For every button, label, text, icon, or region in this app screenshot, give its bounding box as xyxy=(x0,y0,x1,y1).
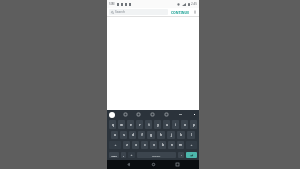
button[interactable]: g xyxy=(147,131,155,139)
button[interactable]: More xyxy=(192,112,197,117)
button[interactable]: c xyxy=(141,141,148,149)
button[interactable]: , xyxy=(121,152,126,158)
button[interactable]: f xyxy=(138,131,145,139)
staticText: d xyxy=(132,133,134,137)
button[interactable]: Recents xyxy=(174,161,181,168)
staticText: j xyxy=(171,133,172,137)
button[interactable]: q xyxy=(109,120,116,129)
staticText: , xyxy=(123,153,124,157)
staticText: f xyxy=(141,133,143,137)
staticText: z xyxy=(126,143,128,147)
button[interactable]: Keyboard tool xyxy=(136,112,141,117)
button[interactable]: Backspace xyxy=(186,141,197,149)
staticText: a xyxy=(114,133,116,137)
button[interactable]: x xyxy=(132,141,139,149)
button[interactable]: h xyxy=(157,131,165,139)
button[interactable]: z xyxy=(123,141,130,149)
staticText: n xyxy=(171,143,173,147)
button[interactable]: u xyxy=(163,120,170,129)
button[interactable]: m xyxy=(177,141,184,149)
button[interactable]: n xyxy=(168,141,175,149)
button[interactable]: Keyboard tool xyxy=(150,112,155,117)
staticText: l xyxy=(191,133,192,137)
button[interactable]: o xyxy=(181,120,188,129)
staticText: y xyxy=(157,123,159,127)
button[interactable]: Shift xyxy=(109,141,121,149)
button[interactable]: Emoji xyxy=(128,152,135,158)
button[interactable]: Home xyxy=(150,161,157,168)
button[interactable]: t xyxy=(145,120,152,129)
button[interactable]: Keyboard tool xyxy=(164,112,169,117)
button[interactable]: y xyxy=(154,120,161,129)
staticText: k xyxy=(180,133,182,137)
staticText: i xyxy=(175,123,176,127)
button[interactable]: p xyxy=(190,120,197,129)
button[interactable]: s xyxy=(120,131,127,139)
staticText: g xyxy=(150,133,152,137)
staticText: p xyxy=(193,123,195,127)
staticText: r xyxy=(139,123,141,127)
button[interactable]: More options xyxy=(193,10,197,14)
staticText: q xyxy=(112,123,114,127)
button[interactable]: Keyboard tool xyxy=(123,112,128,117)
button[interactable]: ?123 xyxy=(109,152,119,158)
staticText: e xyxy=(130,123,132,127)
button[interactable]: Space xyxy=(137,152,176,158)
button[interactable]: v xyxy=(150,141,157,149)
staticText: s xyxy=(123,133,125,137)
staticText: u xyxy=(166,123,168,127)
button[interactable]: w xyxy=(118,120,125,129)
staticText: ?123 xyxy=(111,154,117,157)
button[interactable]: Enter xyxy=(186,152,197,158)
staticText: o xyxy=(184,123,186,127)
staticText: c xyxy=(144,143,146,147)
button[interactable]: . xyxy=(178,152,184,158)
button[interactable]: r xyxy=(136,120,143,129)
staticText: . xyxy=(181,153,182,157)
staticText: b xyxy=(162,143,164,147)
button[interactable]: Settings xyxy=(178,112,183,117)
other: Search xyxy=(111,11,114,14)
button[interactable]: d xyxy=(129,131,136,139)
staticText: h xyxy=(160,133,162,137)
button[interactable]: j xyxy=(167,131,175,139)
staticText: 2:45 xyxy=(191,2,197,6)
button[interactable]: a xyxy=(111,131,118,139)
staticText: Search xyxy=(115,10,126,14)
button[interactable]: k xyxy=(177,131,185,139)
staticText: CONTINUE xyxy=(171,10,190,15)
staticText: x xyxy=(135,143,137,147)
button[interactable]: Google xyxy=(109,112,115,118)
staticText: t xyxy=(148,123,150,127)
button[interactable]: Back xyxy=(125,161,132,168)
button[interactable]: CONTINUE xyxy=(170,9,191,16)
button[interactable]: Search xyxy=(109,9,168,15)
button[interactable]: e xyxy=(127,120,134,129)
button[interactable]: b xyxy=(159,141,166,149)
staticText: w xyxy=(120,123,123,127)
staticText: m xyxy=(179,143,182,147)
staticText: English xyxy=(152,154,161,157)
staticText: v xyxy=(153,143,155,147)
staticText: SIM xyxy=(109,2,115,6)
button[interactable]: i xyxy=(172,120,179,129)
button[interactable]: l xyxy=(187,131,195,139)
